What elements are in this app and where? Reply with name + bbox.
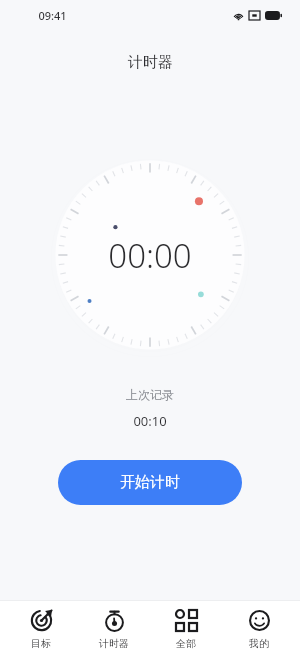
staticText: 00:10 [133, 412, 167, 430]
button[interactable]: 全部 [154, 607, 218, 653]
staticText: 目标 [31, 637, 51, 650]
button[interactable]: 我的 [227, 607, 291, 653]
staticText: 上次记录 [126, 387, 174, 402]
other: 目标 [31, 610, 52, 631]
button[interactable]: 开始计时 [58, 460, 242, 505]
staticText: 计时器 [128, 53, 173, 72]
staticText: 计时器 [99, 637, 129, 650]
other: 全部 [176, 610, 197, 631]
staticText: 开始计时 [120, 473, 180, 492]
staticText: 09:41 [38, 8, 67, 23]
staticText: 全部 [176, 637, 196, 650]
button[interactable]: 计时器 [82, 607, 146, 653]
staticText: 我的 [249, 637, 269, 650]
button[interactable]: 目标 [9, 607, 73, 653]
other: 计时器 [104, 610, 125, 631]
staticText: 00:00 [108, 233, 192, 278]
other: 我的 [249, 610, 270, 631]
